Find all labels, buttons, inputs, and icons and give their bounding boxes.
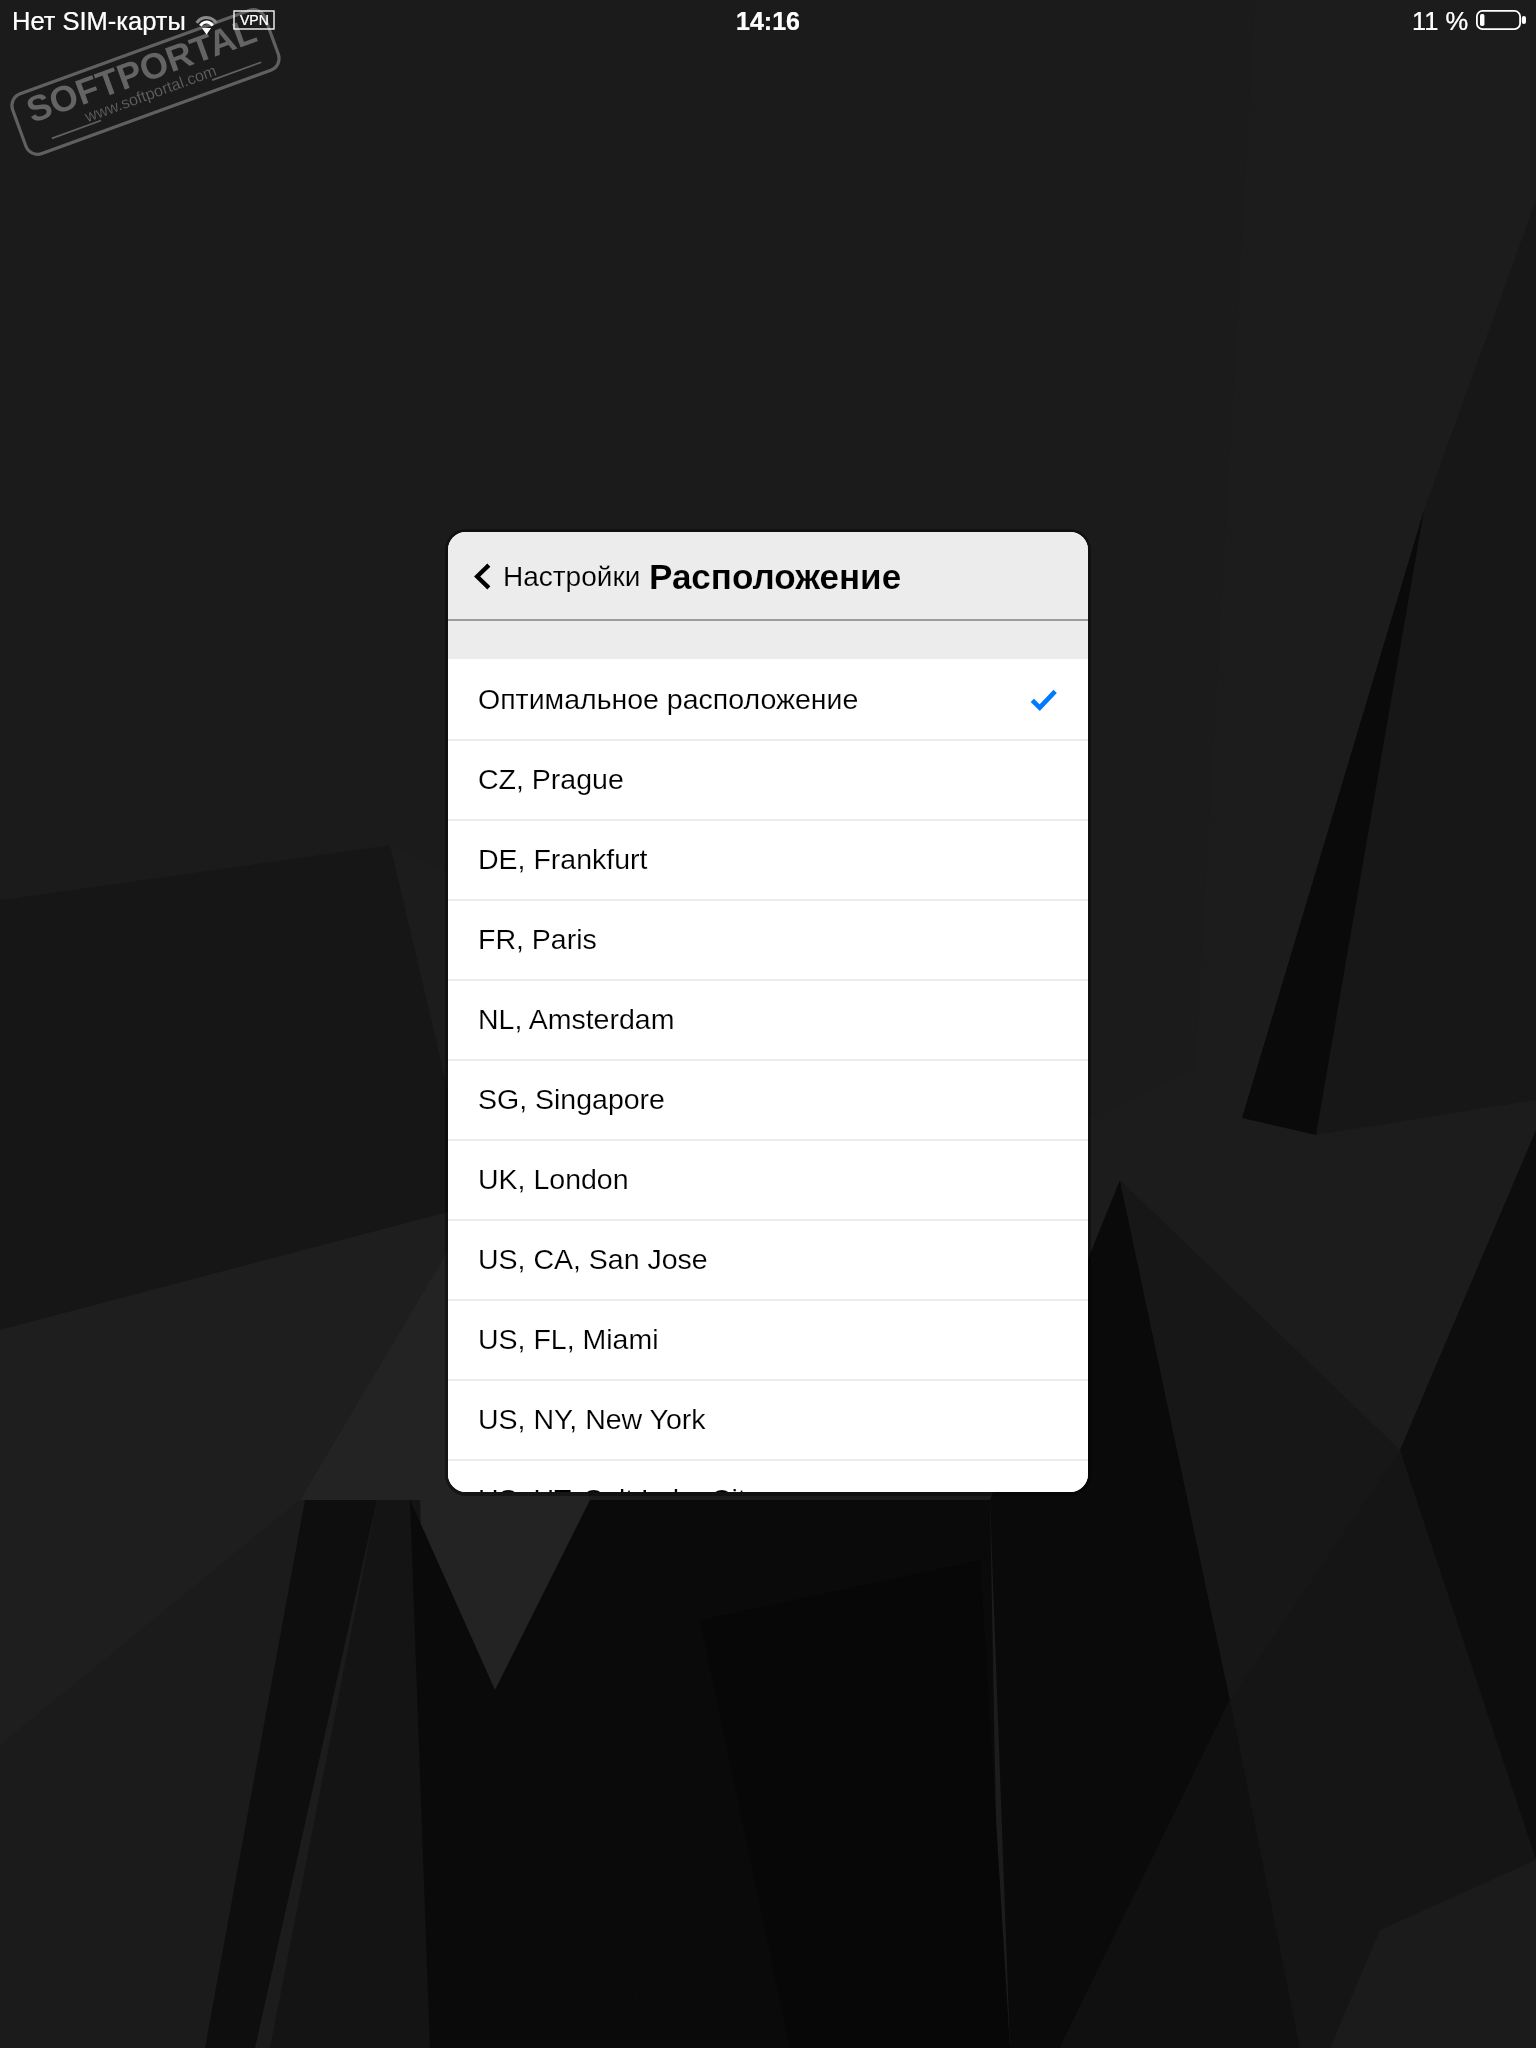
staticText: 14:16 — [736, 7, 800, 35]
staticText: Расположение — [649, 557, 902, 596]
staticText: US, NY, New York — [478, 1403, 706, 1435]
other: Battery — [1476, 10, 1526, 30]
button[interactable]: UK, London — [448, 1139, 1088, 1219]
staticText: SOFTPORTAL — [21, 9, 262, 130]
button[interactable]: NL, Amsterdam — [448, 979, 1088, 1059]
staticText: DE, Frankfurt — [478, 843, 648, 875]
staticText: US, CA, San Jose — [478, 1243, 708, 1275]
staticText: US, FL, Miami — [478, 1323, 659, 1355]
button[interactable]: US, CA, San Jose — [448, 1219, 1088, 1299]
staticText: FR, Paris — [478, 923, 597, 955]
staticText: Настройки — [503, 561, 641, 592]
button[interactable]: SG, Singapore — [448, 1059, 1088, 1139]
button[interactable]: DE, Frankfurt — [448, 819, 1088, 899]
staticText: NL, Amsterdam — [478, 1003, 675, 1035]
staticText: Оптимальное расположение — [478, 683, 859, 715]
staticText: CZ, Prague — [478, 763, 624, 795]
staticText: VPN — [240, 12, 269, 28]
button[interactable]: Оптимальное расположение — [448, 659, 1088, 739]
button[interactable]: Back to Настройки — [448, 545, 649, 608]
button[interactable]: US, UT, Salt Lake City — [448, 1459, 1088, 1492]
staticText: Нет SIM-карты — [12, 7, 186, 35]
button[interactable]: FR, Paris — [448, 899, 1088, 979]
staticText: www.softportal.com — [82, 62, 219, 126]
button[interactable]: CZ, Prague — [448, 739, 1088, 819]
other: Wi-Fi — [195, 11, 218, 34]
staticText: 11 % — [1412, 7, 1469, 35]
button[interactable]: US, FL, Miami — [448, 1299, 1088, 1379]
staticText: UK, London — [478, 1163, 629, 1195]
button[interactable]: US, NY, New York — [448, 1379, 1088, 1459]
staticText: US, UT, Salt Lake City — [478, 1483, 760, 1492]
staticText: SG, Singapore — [478, 1083, 665, 1115]
